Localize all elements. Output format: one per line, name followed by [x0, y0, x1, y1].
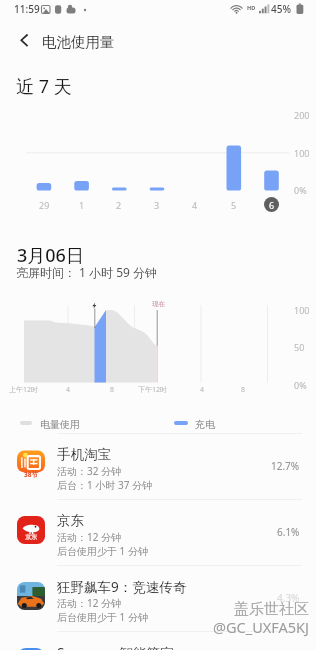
- staticText: 6: [269, 199, 275, 211]
- staticText: 8: [241, 385, 246, 395]
- staticText: 3月06日: [17, 243, 84, 268]
- staticText: 活动：12 分钟: [57, 530, 122, 544]
- staticText: 活动：32 分钟: [57, 464, 122, 478]
- staticText: 电池使用量: [42, 33, 115, 51]
- staticText: 45%: [271, 2, 291, 16]
- staticText: 后台使用少于 1 分钟: [57, 544, 148, 558]
- staticText: 100: [294, 304, 310, 316]
- staticText: 下午12时: [138, 385, 168, 395]
- staticText: 上午12时: [9, 385, 39, 395]
- button[interactable]: 狂野飙车9：竞速传奇: [0, 565, 316, 631]
- staticText: 活动：12 分钟: [57, 596, 122, 610]
- staticText: 手机淘宝: [57, 446, 111, 463]
- staticText: 电量使用: [40, 418, 80, 431]
- staticText: 亮屏时间： 1 小时 59 分钟: [16, 264, 158, 280]
- staticText: 3: [154, 199, 160, 211]
- staticText: 狂野飙车9：竞速传奇: [57, 578, 187, 596]
- staticText: 11:59: [14, 2, 40, 16]
- staticText: 1: [79, 199, 85, 211]
- staticText: 6.1%: [277, 525, 300, 537]
- staticText: 100: [294, 147, 310, 159]
- staticText: 4: [200, 385, 205, 395]
- button[interactable]: 38节: [0, 433, 316, 499]
- staticText: 近 7 天: [16, 74, 72, 99]
- staticText: 盖乐世社区: [234, 600, 309, 619]
- staticText: 0%: [294, 379, 307, 391]
- staticText: 0%: [294, 184, 307, 196]
- staticText: 后台使用少于 1 分钟: [57, 610, 148, 624]
- staticText: 200: [294, 109, 310, 121]
- staticText: Samsung 智能管家: [57, 644, 174, 650]
- button[interactable]: Back: [10, 26, 39, 55]
- staticText: 2: [116, 199, 122, 211]
- staticText: 4: [192, 199, 198, 211]
- staticText: 京东: [25, 533, 37, 541]
- staticText: 8: [110, 385, 115, 395]
- staticText: @GC_UXFA5KJ: [213, 617, 310, 637]
- staticText: 充电: [195, 418, 215, 431]
- staticText: 京东: [57, 512, 84, 529]
- staticText: 29: [39, 199, 50, 211]
- button[interactable]: 京东: [0, 499, 316, 565]
- staticText: 现在: [152, 300, 165, 308]
- staticText: 12.7%: [271, 459, 300, 471]
- staticText: 4.3%: [277, 591, 300, 603]
- staticText: 38节: [24, 470, 38, 479]
- staticText: 5: [231, 199, 237, 211]
- button[interactable]: Samsung 智能管家: [0, 631, 316, 650]
- staticText: 4: [66, 385, 71, 395]
- staticText: 后台：1 小时 37 分钟: [57, 478, 152, 492]
- staticText: 50: [294, 341, 305, 353]
- staticText: HD: [247, 4, 256, 11]
